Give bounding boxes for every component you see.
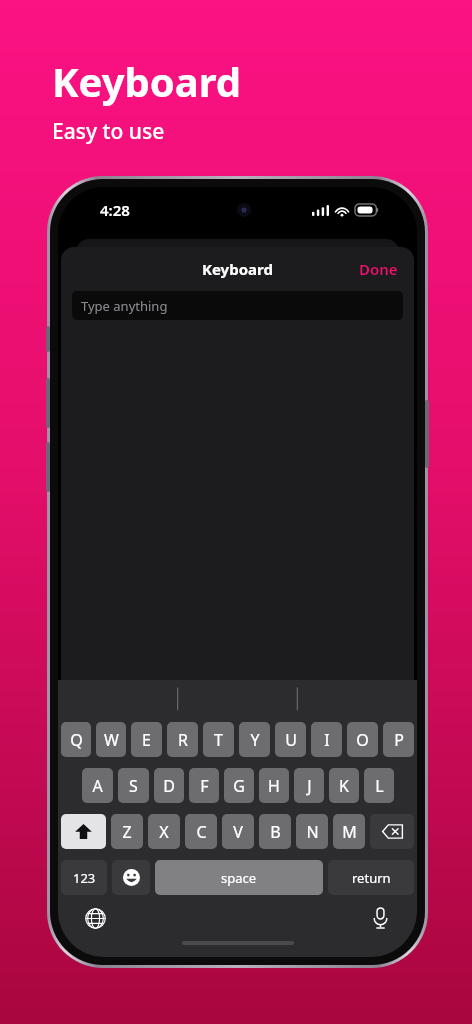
button[interactable]: P	[383, 722, 414, 757]
button[interactable]: J	[294, 768, 324, 803]
button[interactable]: W	[96, 722, 126, 757]
staticText: V	[233, 821, 243, 843]
staticText: Done	[359, 259, 398, 279]
button[interactable]: C	[185, 814, 217, 849]
button[interactable]: T	[203, 722, 234, 757]
button[interactable]: Dictate	[363, 901, 397, 935]
staticText: return	[352, 869, 391, 887]
button[interactable]: D	[154, 768, 184, 803]
staticText: Easy to use	[52, 117, 165, 146]
button[interactable]: Q	[61, 722, 91, 757]
button[interactable]: space	[155, 860, 323, 895]
button[interactable]: Done	[343, 251, 414, 287]
staticText: R	[178, 729, 188, 751]
staticText: Keyboard	[52, 54, 242, 108]
button[interactable]: B	[259, 814, 291, 849]
button[interactable]: 123	[61, 860, 107, 895]
button[interactable]: E	[131, 722, 162, 757]
staticText: space	[221, 869, 257, 887]
button[interactable]: Emoji	[112, 860, 150, 895]
staticText: L	[375, 775, 384, 797]
button[interactable]: F	[189, 768, 219, 803]
staticText: H	[268, 775, 280, 797]
staticText: Y	[250, 729, 260, 751]
staticText: 4:28	[100, 200, 130, 220]
staticText: P	[394, 729, 404, 751]
button[interactable]: L	[364, 768, 394, 803]
staticText: A	[92, 775, 103, 797]
button[interactable]: U	[275, 722, 306, 757]
staticText: D	[163, 775, 175, 797]
staticText: Z	[122, 821, 132, 843]
button[interactable]: S	[118, 768, 149, 803]
staticText: Keyboard	[202, 259, 273, 279]
button[interactable]: Switch keyboard	[78, 901, 112, 935]
button[interactable]: R	[167, 722, 198, 757]
button[interactable]: G	[224, 768, 254, 803]
button[interactable]: X	[148, 814, 180, 849]
staticText: U	[285, 729, 297, 751]
staticText: K	[339, 775, 349, 797]
button[interactable]: N	[296, 814, 328, 849]
button[interactable]: Type anything	[72, 291, 403, 320]
button[interactable]: H	[259, 768, 289, 803]
staticText: B	[270, 821, 281, 843]
button[interactable]: Shift	[61, 814, 106, 849]
staticText: Type anything	[81, 297, 168, 315]
button[interactable]: K	[329, 768, 359, 803]
staticText: J	[307, 775, 312, 797]
staticText: X	[159, 821, 169, 843]
staticText: 123	[73, 869, 96, 887]
staticText: G	[233, 775, 245, 797]
staticText: I	[324, 729, 330, 751]
button[interactable]: I	[311, 722, 342, 757]
button[interactable]: V	[222, 814, 254, 849]
button[interactable]: Backspace	[370, 814, 414, 849]
button[interactable]: Y	[239, 722, 270, 757]
staticText: W	[104, 729, 119, 751]
staticText: N	[306, 821, 319, 843]
button[interactable]: O	[347, 722, 378, 757]
staticText: Q	[70, 729, 83, 751]
staticText: O	[356, 729, 369, 751]
staticText: E	[142, 729, 151, 751]
button[interactable]: return	[328, 860, 414, 895]
button[interactable]: M	[333, 814, 365, 849]
staticText: M	[342, 821, 357, 843]
button[interactable]: A	[82, 768, 113, 803]
staticText: C	[196, 821, 207, 843]
button[interactable]: Z	[111, 814, 143, 849]
staticText: F	[200, 775, 209, 797]
staticText: S	[129, 775, 138, 797]
staticText: T	[214, 729, 223, 751]
